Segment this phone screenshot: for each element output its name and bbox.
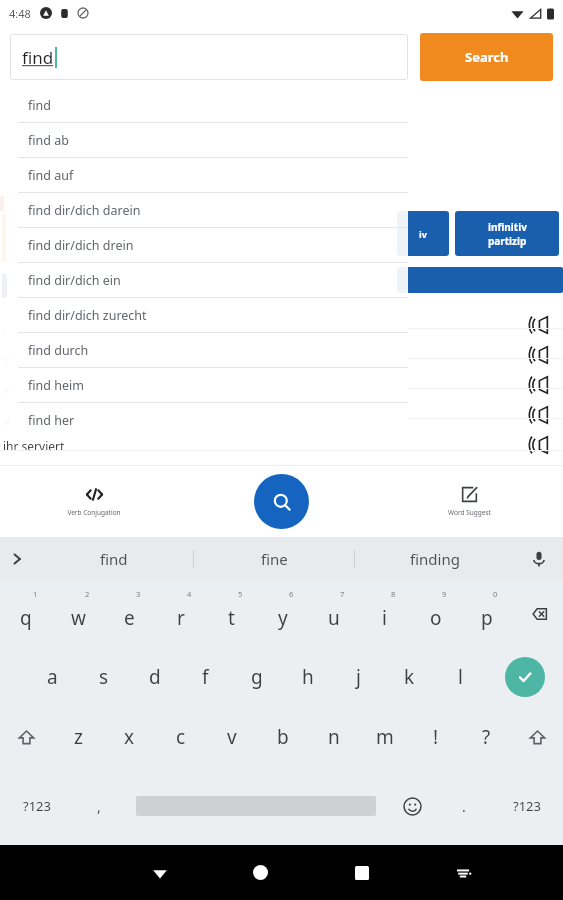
button[interactable]: 3: [104, 581, 155, 647]
button[interactable]: f: [180, 647, 231, 707]
button[interactable]: 7: [308, 581, 359, 647]
staticText: 5: [238, 589, 243, 599]
staticText: find auf: [28, 167, 74, 184]
button[interactable]: Hide keyboard: [110, 845, 210, 900]
button[interactable]: h: [282, 647, 333, 707]
button[interactable]: infinitiv: [455, 211, 559, 256]
button[interactable]: Emoji: [386, 767, 438, 845]
staticText: ?: [482, 724, 491, 750]
button[interactable]: 8: [359, 581, 410, 647]
staticText: Search: [465, 48, 509, 66]
staticText: r: [177, 605, 185, 631]
button[interactable]: fine: [194, 537, 354, 581]
button[interactable]: Play pronunciation: [524, 310, 554, 340]
button[interactable]: find ab: [0, 123, 408, 157]
button[interactable]: find: [0, 88, 408, 122]
staticText: c: [176, 724, 186, 750]
button[interactable]: find: [10, 34, 408, 80]
staticText: t: [228, 605, 235, 631]
button[interactable]: ?123: [0, 767, 73, 845]
button[interactable]: 6: [257, 581, 308, 647]
button[interactable]: Home: [210, 845, 311, 900]
button[interactable]: Backspace: [512, 581, 563, 647]
button[interactable]: n: [308, 707, 359, 767]
button[interactable]: iv: [397, 211, 449, 256]
button[interactable]: d: [129, 647, 180, 707]
button[interactable]: m: [359, 707, 410, 767]
button[interactable]: find auf: [0, 158, 408, 192]
staticText: 8: [391, 589, 396, 599]
staticText: 6: [289, 589, 294, 599]
button[interactable]: 4: [155, 581, 206, 647]
staticText: g: [251, 664, 263, 690]
button[interactable]: 5: [206, 581, 257, 647]
staticText: 4:48: [9, 6, 31, 21]
button[interactable]: Shift: [0, 707, 52, 767]
button[interactable]: 9: [410, 581, 461, 647]
staticText: p: [481, 605, 493, 631]
button[interactable]: find her: [0, 403, 408, 437]
button[interactable]: find dir/dich ein: [0, 263, 408, 297]
button[interactable]: Voice input: [515, 537, 563, 581]
staticText: find: [100, 549, 128, 569]
staticText: .: [462, 797, 466, 816]
button[interactable]: ?: [461, 707, 512, 767]
button[interactable]: find dir/dich drein: [0, 228, 408, 262]
button[interactable]: Play pronunciation: [524, 340, 554, 370]
button[interactable]: Enter: [486, 647, 563, 707]
button[interactable]: finding: [355, 537, 515, 581]
button[interactable]: Recents: [311, 845, 412, 900]
button[interactable]: l: [435, 647, 486, 707]
button[interactable]: ?123: [490, 767, 563, 845]
staticText: a: [47, 664, 58, 690]
button[interactable]: 1: [0, 581, 52, 647]
staticText: !: [433, 724, 439, 750]
button[interactable]: find heim: [0, 368, 408, 402]
button[interactable]: ,: [73, 767, 125, 845]
button[interactable]: x: [104, 707, 155, 767]
button[interactable]: find dir/dich zurecht: [0, 298, 408, 332]
button[interactable]: Verb Conjugation: [0, 465, 187, 537]
button[interactable]: !: [410, 707, 461, 767]
staticText: ?123: [23, 797, 51, 815]
button[interactable]: [397, 267, 563, 293]
button[interactable]: Search: [254, 474, 309, 529]
button[interactable]: g: [231, 647, 282, 707]
button[interactable]: More suggestions: [0, 537, 34, 581]
button[interactable]: .: [438, 767, 490, 845]
button[interactable]: Shift: [512, 707, 563, 767]
button[interactable]: k: [384, 647, 435, 707]
button[interactable]: find dir/dich darein: [0, 193, 408, 227]
button[interactable]: j: [333, 647, 384, 707]
staticText: find durch: [28, 342, 89, 359]
button[interactable]: 2: [52, 581, 104, 647]
button[interactable]: Search: [420, 33, 553, 81]
staticText: find heim: [28, 377, 84, 394]
staticText: find dir/dich drein: [28, 237, 134, 254]
button[interactable]: c: [155, 707, 206, 767]
staticText: b: [277, 724, 289, 750]
button[interactable]: Play pronunciation: [524, 370, 554, 400]
button[interactable]: a: [27, 647, 78, 707]
button[interactable]: Space: [125, 767, 386, 845]
staticText: w: [71, 605, 86, 631]
button[interactable]: s: [78, 647, 129, 707]
staticText: v: [227, 724, 237, 750]
button[interactable]: z: [52, 707, 104, 767]
staticText: 7: [340, 589, 345, 599]
button[interactable]: 0: [461, 581, 512, 647]
button[interactable]: Play pronunciation: [524, 430, 554, 460]
staticText: ?123: [513, 797, 541, 815]
button[interactable]: Switch keyboard: [412, 845, 513, 900]
button[interactable]: b: [257, 707, 308, 767]
staticText: f: [202, 664, 209, 690]
button[interactable]: find: [34, 537, 193, 581]
button[interactable]: v: [206, 707, 257, 767]
staticText: 3: [136, 589, 141, 599]
button[interactable]: Play pronunciation: [524, 400, 554, 430]
button[interactable]: Word Suggest: [375, 465, 563, 537]
staticText: 4: [187, 589, 192, 599]
button[interactable]: find durch: [0, 333, 408, 367]
